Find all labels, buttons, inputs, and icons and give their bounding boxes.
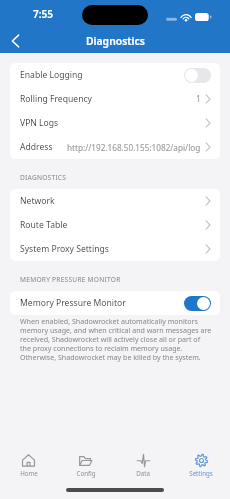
staticText: Data <box>136 469 150 477</box>
staticText: 7:55 <box>33 7 53 21</box>
button[interactable]: Toggle <box>184 68 211 83</box>
button[interactable]: Settings <box>172 454 230 477</box>
button[interactable]: Toggle <box>184 296 211 311</box>
button[interactable]: Back <box>3 29 27 53</box>
staticText: Config <box>76 469 96 477</box>
staticText: Enable Logging <box>20 69 83 81</box>
staticText: Diagnostics <box>86 34 145 48</box>
button[interactable]: Memory Pressure Monitor <box>10 291 220 315</box>
staticText: Memory Pressure Monitor <box>20 297 126 309</box>
staticText: Route Table <box>20 219 68 231</box>
button[interactable]: Enable Logging <box>10 63 220 87</box>
button[interactable]: Route Table <box>10 213 220 237</box>
staticText: 1 <box>196 93 201 105</box>
staticText: System Proxy Settings <box>20 243 109 255</box>
staticText: DIAGNOSTICS <box>20 173 67 182</box>
staticText: When enabled, Shadowrocket automatically… <box>20 316 212 362</box>
staticText: MEMORY PRESSURE MONITOR <box>20 275 121 284</box>
button[interactable]: VPN Logs <box>10 111 220 135</box>
staticText: http://192.168.50.155:1082/api/log <box>67 142 201 153</box>
button[interactable]: Network <box>10 189 220 213</box>
staticText: Home <box>20 469 38 477</box>
button[interactable]: Config <box>57 454 114 477</box>
button[interactable]: Rolling Frequency <box>10 87 220 111</box>
staticText: Address <box>20 141 53 153</box>
staticText: Network <box>20 195 55 207</box>
button[interactable]: Data <box>114 454 172 477</box>
staticText: Rolling Frequency <box>20 93 92 105</box>
staticText: Settings <box>189 469 213 477</box>
staticText: VPN Logs <box>20 117 59 129</box>
button[interactable]: Address <box>10 135 220 159</box>
button[interactable]: Home <box>0 454 57 477</box>
button[interactable]: System Proxy Settings <box>10 237 220 261</box>
